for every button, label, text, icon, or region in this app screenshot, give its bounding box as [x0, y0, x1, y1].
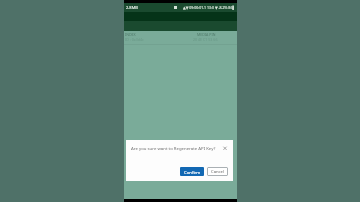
button[interactable]: Close dialog — [221, 144, 229, 152]
staticText: ID : 0x3d4c — [125, 37, 144, 42]
staticText: ▲▼ 09:00:01.1 13:0 ▼ -8.2% 86▌ — [183, 5, 236, 10]
button[interactable]: Confirm — [180, 167, 204, 176]
staticText: 2.8MB — [126, 5, 138, 10]
staticText: 20 4E C1 53 66 — [193, 37, 218, 42]
staticText: Are you sure want to Regenerate API Key? — [131, 145, 216, 151]
staticText: Confirm — [184, 169, 201, 175]
staticText: Cancel — [211, 169, 225, 175]
staticText: MEDIA PIN — [197, 32, 216, 37]
staticText: INDEX — [125, 32, 136, 37]
button[interactable]: Cancel — [207, 167, 228, 176]
